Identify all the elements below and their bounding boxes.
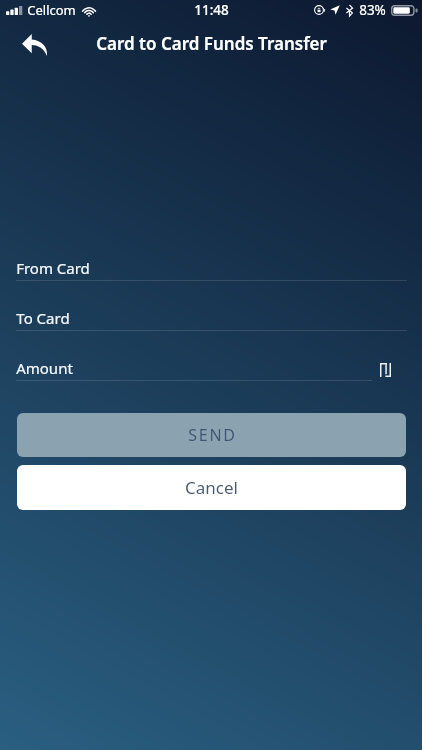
staticText: Amount	[16, 358, 73, 378]
staticText: To Card	[16, 308, 70, 328]
staticText: From Card	[16, 258, 90, 278]
staticText: Card to Card Funds Transfer	[96, 32, 327, 55]
button[interactable]: Amount	[16, 352, 372, 381]
staticText: 83%	[359, 1, 386, 19]
button[interactable]: SEND	[17, 413, 406, 457]
button[interactable]: To Card	[16, 302, 407, 331]
button[interactable]: Back	[13, 24, 57, 66]
staticText: Cancel	[185, 476, 238, 499]
button[interactable]: From Card	[16, 252, 407, 281]
staticText: Cellcom	[27, 1, 76, 19]
staticText: SEND	[188, 424, 237, 446]
button[interactable]: Cancel	[17, 465, 406, 510]
staticText: 11:48	[194, 1, 229, 19]
